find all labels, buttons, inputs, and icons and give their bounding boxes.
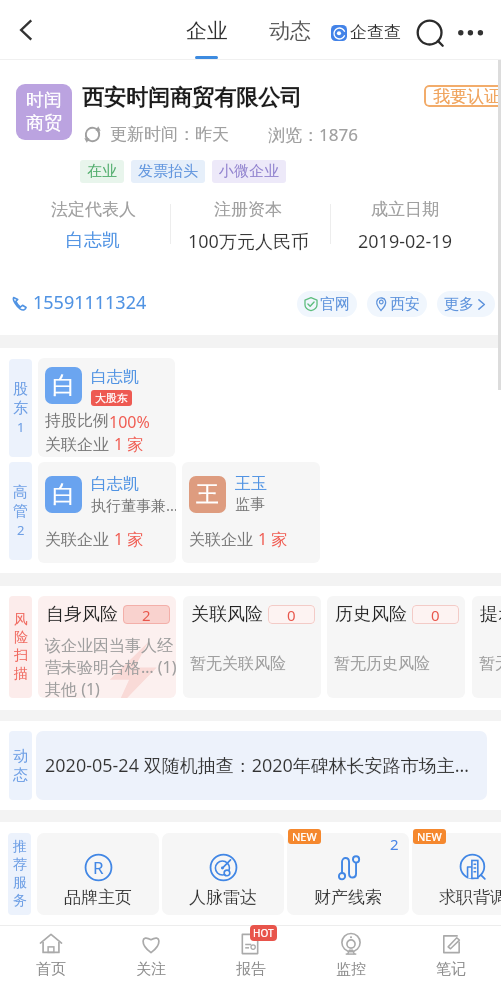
staticText: 股 (13, 380, 28, 399)
staticText: 风 (14, 611, 28, 629)
staticText: 关联风险 (191, 603, 263, 626)
staticText: 关联企业 (45, 433, 114, 455)
staticText: 2 (142, 605, 151, 624)
staticText: 动 (13, 747, 28, 766)
staticText: 官网 (320, 295, 350, 314)
button[interactable]: 官网 (304, 291, 350, 317)
button[interactable]: 笔记 (401, 926, 501, 1000)
staticText: 100% (109, 411, 150, 433)
staticText: 2 (17, 521, 25, 539)
staticText: 15591111324 (33, 290, 147, 315)
staticText: 态 (13, 766, 28, 785)
button[interactable]: 提示信息 (472, 596, 501, 698)
button[interactable]: Search (411, 14, 449, 52)
staticText: 历史风险 (335, 603, 407, 626)
button[interactable]: 求职背调 (412, 833, 501, 915)
button[interactable]: 白 (38, 358, 175, 457)
staticText: 笔记 (436, 960, 466, 979)
staticText: 2 (390, 834, 399, 854)
button[interactable]: 白 (38, 462, 176, 563)
staticText: 西安时闰商贸有限公司 (82, 84, 302, 112)
staticText: 更多 (444, 295, 474, 314)
button[interactable]: 2020-05-24 双随机抽查：2020年碑林长安路市场主… (36, 731, 487, 800)
staticText: 成立日期 (371, 199, 439, 220)
button[interactable]: 更多 (444, 291, 488, 317)
staticText: 品牌主页 (64, 887, 132, 908)
staticText: 人脉雷达 (189, 887, 257, 908)
staticText: 关联企业 (189, 528, 258, 550)
staticText: 该企业因当事人经 (45, 636, 173, 656)
button[interactable]: 西安 (374, 291, 420, 317)
staticText: 自身风险 (46, 603, 118, 626)
staticText: 白志凯 (91, 474, 139, 494)
staticText: 时闰 (26, 89, 62, 112)
staticText: 求职背调 (439, 887, 501, 908)
staticText: 暂无提示信息 (479, 654, 501, 674)
staticText: 我要认证 (433, 86, 501, 107)
staticText: HOT (253, 926, 274, 940)
staticText: 险 (14, 629, 28, 647)
staticText: 管 (13, 502, 28, 521)
staticText: 0 (287, 605, 296, 624)
staticText: 2019-02-19 (358, 229, 452, 254)
staticText: 2020-05-24 双随机抽查：2020年碑林长安路市场主… (45, 753, 470, 778)
staticText: 企业 (186, 18, 228, 44)
button[interactable]: 关注 (101, 926, 201, 1000)
button[interactable]: 王 (182, 462, 320, 563)
button[interactable]: 企查查 (331, 22, 401, 43)
staticText: 描 (14, 665, 28, 683)
staticText: 白 (52, 371, 75, 400)
button[interactable]: 首页 (0, 926, 101, 1000)
button[interactable]: 发票抬头 (138, 162, 198, 181)
staticText: R (93, 856, 104, 879)
staticText: 高 (13, 483, 28, 502)
button[interactable]: 动态 (259, 0, 320, 60)
staticText: NEW (417, 829, 442, 844)
staticText: 服 (13, 874, 27, 892)
staticText: 报告 (236, 960, 266, 979)
button[interactable]: 监控 (301, 926, 401, 1000)
staticText: 发票抬头 (138, 162, 198, 181)
staticText: 务 (13, 892, 27, 910)
staticText: 监控 (336, 960, 366, 979)
staticText: 白志凯 (66, 229, 120, 252)
staticText: 动态 (269, 18, 311, 44)
staticText: 监事 (235, 495, 265, 514)
button[interactable]: 注册资本 (155, 199, 341, 254)
staticText: 王 (196, 480, 219, 509)
button[interactable]: 法定代表人 (0, 199, 186, 252)
staticText: 东 (13, 399, 28, 418)
staticText: 财产线索 (314, 887, 382, 908)
button[interactable]: 我要认证 (424, 85, 501, 107)
staticText: 暂无历史风险 (334, 654, 430, 674)
button[interactable]: More options (450, 14, 490, 54)
staticText: 白志凯 (91, 367, 139, 387)
staticText: 持股比例 (45, 411, 109, 431)
staticText: 1 家 (114, 433, 144, 455)
staticText: 法定代表人 (51, 199, 136, 220)
button[interactable]: 财产线索 (287, 833, 409, 915)
button[interactable]: R (37, 833, 159, 915)
staticText: 王玉 (235, 474, 267, 494)
staticText: 荐 (13, 856, 27, 874)
button[interactable]: Back (4, 8, 48, 52)
button[interactable]: 企业 (176, 0, 237, 60)
button[interactable]: 人脉雷达 (162, 833, 284, 915)
button[interactable]: HOT (201, 926, 301, 1000)
button[interactable]: 成立日期 (315, 199, 495, 254)
staticText: 在业 (87, 162, 117, 181)
staticText: 关联企业 (45, 528, 114, 550)
staticText: 暂无关联风险 (190, 654, 286, 674)
staticText: 白 (52, 480, 75, 509)
staticText: 商贸 (26, 112, 62, 135)
button[interactable]: 小微企业 (219, 162, 279, 181)
staticText: 提示信息 (480, 603, 501, 626)
staticText: 1 (17, 418, 25, 436)
staticText: 0 (431, 605, 440, 624)
staticText: 扫 (14, 647, 28, 665)
button[interactable]: 自身风险 (38, 596, 176, 698)
button[interactable]: 历史风险 (327, 596, 465, 698)
button[interactable]: 在业 (87, 162, 117, 181)
staticText: 注册资本 (214, 199, 282, 220)
button[interactable]: 关联风险 (183, 596, 321, 698)
